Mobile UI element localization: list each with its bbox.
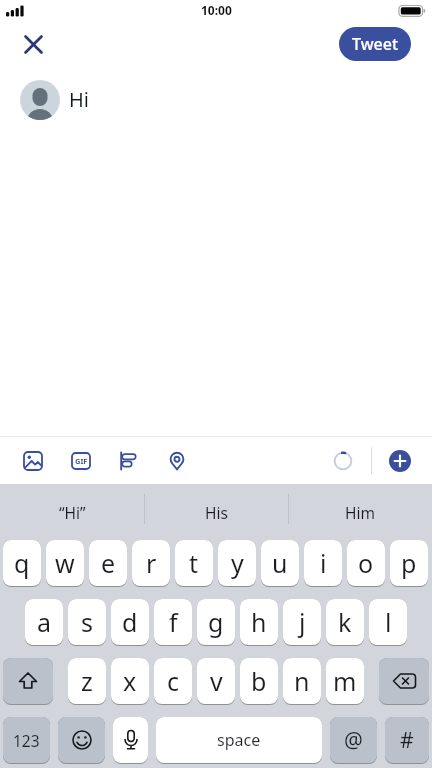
button[interactable]: a <box>25 599 63 645</box>
button[interactable] <box>119 451 139 471</box>
button[interactable]: Him <box>288 484 432 540</box>
button[interactable]: k <box>326 599 364 645</box>
staticText: m <box>333 664 357 698</box>
staticText: # <box>400 726 414 755</box>
button[interactable]: @ <box>330 717 377 763</box>
button[interactable]: m <box>326 658 364 704</box>
button[interactable]: His <box>144 484 288 540</box>
staticText: r <box>146 546 157 580</box>
button[interactable] <box>23 451 43 471</box>
staticText: His <box>205 502 228 523</box>
staticText: d <box>122 605 138 639</box>
staticText: a <box>37 605 52 639</box>
button[interactable] <box>389 450 411 472</box>
button[interactable]: t <box>175 540 213 586</box>
staticText: b <box>251 664 267 698</box>
button[interactable]: Tweet <box>339 27 411 61</box>
button[interactable]: 123 <box>3 717 50 763</box>
staticText: l <box>385 605 392 639</box>
button[interactable]: n <box>283 658 321 704</box>
staticText: g <box>208 605 224 639</box>
staticText: z <box>81 664 93 698</box>
staticText: y <box>231 546 244 580</box>
staticText: Him <box>345 502 375 523</box>
button[interactable]: j <box>283 599 321 645</box>
button[interactable]: h <box>240 599 278 645</box>
button[interactable]: x <box>111 658 149 704</box>
staticText: space <box>217 729 261 751</box>
staticText: @ <box>344 726 363 755</box>
button[interactable] <box>58 717 105 763</box>
button[interactable] <box>3 658 53 704</box>
staticText: q <box>14 546 30 580</box>
staticText: “Hi” <box>59 502 86 523</box>
button[interactable]: f <box>154 599 192 645</box>
staticText: v <box>210 664 223 698</box>
button[interactable]: e <box>89 540 127 586</box>
staticText: f <box>169 605 178 639</box>
button[interactable]: v <box>197 658 235 704</box>
staticText: t <box>189 546 199 580</box>
button[interactable]: # <box>385 717 429 763</box>
staticText: u <box>272 546 288 580</box>
staticText: c <box>167 664 180 698</box>
staticText: i <box>320 546 327 580</box>
button[interactable] <box>13 24 53 64</box>
button[interactable] <box>167 451 187 471</box>
button[interactable]: i <box>304 540 342 586</box>
staticText: 123 <box>13 730 40 751</box>
button[interactable]: w <box>46 540 84 586</box>
staticText: x <box>123 664 137 698</box>
button[interactable] <box>379 658 429 704</box>
staticText: o <box>358 546 374 580</box>
button[interactable] <box>113 717 148 763</box>
staticText: w <box>55 546 75 580</box>
button[interactable]: c <box>154 658 192 704</box>
staticText: k <box>338 605 352 639</box>
button[interactable]: o <box>347 540 385 586</box>
staticText: j <box>299 605 306 639</box>
button[interactable]: y <box>218 540 256 586</box>
button[interactable]: u <box>261 540 299 586</box>
button[interactable]: “Hi” <box>0 484 144 540</box>
button[interactable]: q <box>3 540 41 586</box>
staticText: p <box>401 546 417 580</box>
button[interactable]: s <box>68 599 106 645</box>
button[interactable]: r <box>132 540 170 586</box>
button[interactable]: GIF <box>71 451 91 471</box>
button[interactable]: p <box>390 540 428 586</box>
staticText: n <box>294 664 310 698</box>
button[interactable]: b <box>240 658 278 704</box>
button[interactable]: space <box>156 717 322 763</box>
staticText: h <box>251 605 267 639</box>
button[interactable]: d <box>111 599 149 645</box>
staticText: 10:00 <box>201 2 232 18</box>
staticText: GIF <box>75 456 88 466</box>
button[interactable]: g <box>197 599 235 645</box>
staticText: s <box>81 605 93 639</box>
staticText: Hi <box>69 86 89 113</box>
staticText: e <box>101 546 116 580</box>
button[interactable]: l <box>369 599 407 645</box>
staticText: Tweet <box>352 33 399 55</box>
button[interactable]: z <box>68 658 106 704</box>
